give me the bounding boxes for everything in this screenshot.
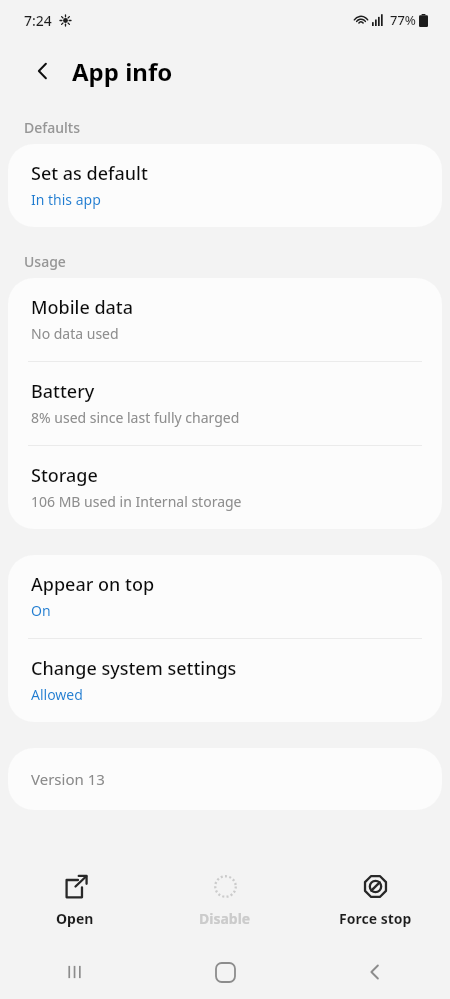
- staticText: No data used: [31, 324, 119, 343]
- button[interactable]: Set as default: [8, 144, 442, 227]
- staticText: Appear on top: [31, 572, 155, 597]
- button[interactable]: Appear on top: [8, 555, 442, 638]
- button[interactable]: Force stop: [300, 865, 450, 936]
- button[interactable]: Battery: [8, 362, 442, 445]
- staticText: On: [31, 601, 51, 620]
- staticText: Defaults: [24, 118, 80, 137]
- staticText: Allowed: [31, 685, 83, 704]
- staticText: 8% used since last fully charged: [31, 408, 240, 427]
- staticText: Usage: [24, 252, 66, 271]
- button[interactable]: Storage: [8, 446, 442, 529]
- button[interactable]: Open: [0, 865, 150, 936]
- staticText: 106 MB used in Internal storage: [31, 492, 242, 511]
- staticText: In this app: [31, 190, 101, 209]
- button[interactable]: Home: [150, 945, 300, 999]
- button[interactable]: Recents: [0, 945, 150, 999]
- staticText: Mobile data: [31, 295, 134, 320]
- staticText: Change system settings: [31, 656, 237, 681]
- button[interactable]: Disable: [150, 865, 300, 936]
- button[interactable]: Back: [300, 945, 450, 999]
- staticText: Disable: [199, 909, 251, 928]
- staticText: Battery: [31, 379, 95, 404]
- staticText: 77%: [390, 11, 416, 29]
- staticText: Open: [56, 909, 94, 928]
- staticText: Set as default: [31, 161, 148, 186]
- staticText: Storage: [31, 463, 98, 488]
- staticText: App info: [72, 55, 173, 88]
- staticText: Version 13: [31, 769, 105, 789]
- button[interactable]: Mobile data: [8, 278, 442, 361]
- button[interactable]: Change system settings: [8, 639, 442, 722]
- staticText: Force stop: [339, 909, 412, 928]
- button[interactable]: Back: [26, 54, 60, 88]
- staticText: 7:24: [24, 11, 52, 30]
